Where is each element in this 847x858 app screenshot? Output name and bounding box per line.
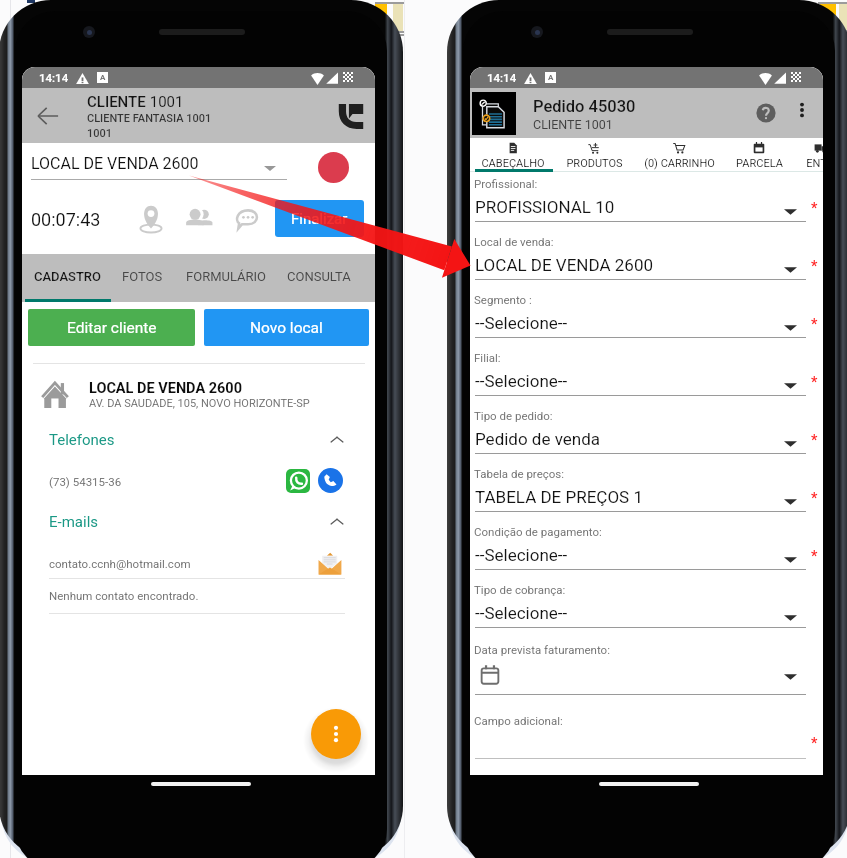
staticText: Pedido de venda [475,429,601,449]
staticText: * [811,548,818,564]
staticText: Nenhum contato encontrado. [49,589,199,602]
staticText: Telefones [49,431,115,449]
staticText: * [811,374,818,390]
staticText: CABEÇALHO [481,157,545,170]
staticText: --Selecione-- [475,371,568,391]
staticText: contato.ccnh@hotmail.com [49,557,191,570]
staticText: CLIENTE 1001 [533,117,613,132]
staticText: * [811,432,818,448]
button[interactable]: Telefones [22,423,375,456]
button[interactable]: Call client [327,88,375,143]
staticText: * [811,258,818,274]
button[interactable]: LOCAL DE VENDA 2600 [22,372,375,418]
staticText: (0) CARRINHO [644,157,715,170]
staticText: AV. DA SAUDADE, 105, NOVO HORIZONTE-SP [89,397,310,410]
staticText: Finalizar [291,210,348,228]
button[interactable]: PRODUTOS [561,138,627,172]
staticText: LOCAL DE VENDA 2600 [89,380,243,397]
staticText: * [811,200,818,216]
staticText: CLIENTE [87,93,146,111]
button[interactable]: Tipo de cobrança: [470,578,823,636]
staticText: Novo local [250,319,323,337]
staticText: CLIENTE FANTASIA 1001 [87,112,212,125]
staticText: Filial: [474,351,501,364]
staticText: CONSULTA [287,269,351,284]
button[interactable]: Order [472,92,516,135]
staticText: Tipo de pedido: [474,409,553,422]
staticText: --Selecione-- [475,545,568,565]
staticText: * [811,316,818,332]
button[interactable]: Tabela de preços: [470,462,823,520]
staticText: PROFISSIONAL 10 [475,197,615,217]
staticText: Pedido 45030 [533,97,636,116]
button[interactable]: E-mails [22,505,375,538]
staticText: Campo adicional: [474,714,563,727]
button[interactable]: Visit status [318,152,349,183]
button[interactable]: WhatsApp [286,469,310,493]
staticText: LOCAL DE VENDA 2600 [475,255,653,275]
button[interactable]: Back [22,88,74,143]
staticText: FOTOS [122,269,163,284]
button[interactable]: (0) CARRINHO [638,138,720,172]
staticText: A [100,73,106,82]
button[interactable]: Tipo de pedido: [470,404,823,462]
button[interactable]: More options [789,97,814,122]
staticText: 14:14 [39,71,69,84]
staticText: TABELA DE PREÇOS 1 [475,487,643,507]
button[interactable]: More actions [311,709,361,759]
staticText: Condição de pagamento: [474,525,602,538]
staticText: Editar cliente [67,319,157,337]
staticText: A [548,73,554,82]
button[interactable]: Condição de pagamento: [470,520,823,578]
button[interactable]: Segmento : [470,288,823,346]
button[interactable]: Data prevista faturamento: [470,636,823,706]
button[interactable] [22,143,375,188]
button[interactable]: Editar cliente [28,309,195,346]
button[interactable]: Novo local [204,309,369,346]
button[interactable]: CONSULTA [287,269,351,284]
button[interactable]: FOTOS [122,269,163,284]
button[interactable]: CADASTRO [34,269,102,284]
staticText: Profissional: [474,177,538,190]
staticText: Tipo de cobrança: [474,583,566,596]
staticText: PARCELA [736,157,783,170]
staticText: LOCAL DE VENDA 2600 [31,154,199,173]
button[interactable]: Campo adicional: [470,706,823,766]
button[interactable]: CABEÇALHO [473,138,552,172]
staticText: FORMULÁRIO [186,269,267,284]
button[interactable]: Filial: [470,346,823,404]
staticText: PRODUTOS [566,157,623,170]
staticText: * [811,490,818,506]
button[interactable]: ENTR [800,138,823,172]
button[interactable]: Finalizar [275,200,364,237]
button[interactable]: FORMULÁRIO [186,269,267,284]
staticText: E-mails [49,513,99,531]
staticText: Data prevista faturamento: [474,643,610,656]
staticText: 1001 [146,93,184,111]
staticText: 00:07:43 [31,209,101,230]
staticText: Local de venda: [474,235,554,248]
button[interactable]: Send e-mail [316,549,346,579]
staticText: (73) 54315-36 [49,475,122,488]
staticText: --Selecione-- [475,603,568,623]
button[interactable]: Check in location [135,203,167,235]
staticText: * [811,735,818,751]
staticText: 14:14 [487,71,517,84]
button[interactable]: Profissional: [470,172,823,230]
staticText: CADASTRO [34,269,102,284]
button[interactable]: Messages [231,203,263,235]
staticText: --Selecione-- [475,313,568,333]
staticText: 1001 [87,127,113,140]
staticText: Segmento : [474,293,532,306]
button[interactable]: Call [318,468,343,493]
staticText: Tabela de preços: [474,467,565,480]
button[interactable]: Contacts [183,202,215,234]
button[interactable]: Local de venda: [470,230,823,288]
staticText: ENTR [806,157,823,170]
button[interactable]: PARCELA [728,138,790,172]
button[interactable]: Help [748,95,784,131]
